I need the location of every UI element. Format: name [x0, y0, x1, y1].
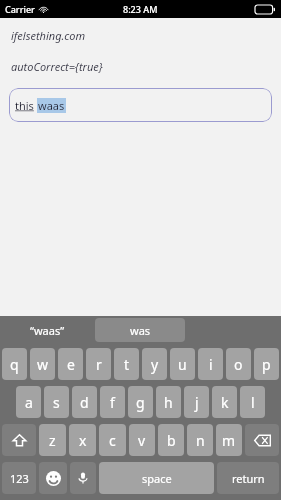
staticText: n: [196, 431, 205, 450]
button[interactable]: b: [158, 424, 184, 456]
button[interactable]: r: [86, 348, 111, 380]
button[interactable]: Shift: [2, 424, 36, 456]
button[interactable]: h: [156, 386, 181, 418]
button[interactable]: was: [95, 318, 185, 342]
staticText: 123: [10, 471, 29, 486]
staticText: u: [178, 355, 187, 374]
staticText: e: [67, 355, 75, 374]
button[interactable]: n: [187, 424, 213, 456]
button[interactable]: m: [216, 424, 242, 456]
staticText: z: [49, 431, 56, 450]
staticText: f: [110, 393, 115, 412]
button[interactable]: Emoji: [39, 462, 67, 494]
staticText: was: [130, 323, 151, 338]
staticText: i: [209, 355, 213, 374]
button[interactable]: u: [170, 348, 195, 380]
staticText: this: [15, 98, 34, 113]
button[interactable]: k: [212, 386, 237, 418]
staticText: “waas”: [30, 323, 65, 338]
button[interactable]: Voice input: [70, 462, 96, 494]
button[interactable]: a: [16, 386, 41, 418]
staticText: d: [80, 393, 89, 412]
button[interactable]: j: [184, 386, 209, 418]
staticText: l: [251, 393, 255, 412]
button[interactable]: space: [99, 462, 214, 494]
staticText: Carrier: [5, 3, 35, 15]
staticText: return: [232, 471, 265, 486]
staticText: c: [109, 431, 116, 450]
staticText: q: [10, 355, 19, 374]
button[interactable]: this: [9, 88, 272, 122]
staticText: k: [221, 393, 229, 412]
button[interactable]: x: [69, 424, 96, 456]
button[interactable]: d: [72, 386, 97, 418]
button[interactable]: g: [128, 386, 153, 418]
staticText: x: [79, 431, 87, 450]
button[interactable]: t: [114, 348, 139, 380]
staticText: s: [53, 393, 60, 412]
button[interactable]: 123: [2, 462, 36, 494]
button[interactable]: return: [217, 462, 279, 494]
staticText: a: [25, 393, 33, 412]
button[interactable]: p: [254, 348, 279, 380]
staticText: r: [96, 355, 102, 374]
button[interactable]: z: [39, 424, 66, 456]
staticText: o: [234, 355, 243, 374]
button[interactable]: c: [99, 424, 126, 456]
staticText: j: [195, 393, 199, 412]
button[interactable]: l: [240, 386, 265, 418]
button[interactable]: o: [226, 348, 251, 380]
staticText: y: [151, 355, 159, 374]
button[interactable]: v: [129, 424, 155, 456]
staticText: g: [136, 393, 145, 412]
button[interactable]: q: [2, 348, 27, 380]
button[interactable]: i: [198, 348, 223, 380]
button[interactable]: f: [100, 386, 125, 418]
button[interactable]: y: [142, 348, 167, 380]
button[interactable]: w: [30, 348, 55, 380]
staticText: h: [164, 393, 173, 412]
staticText: 8:23 AM: [123, 3, 158, 15]
button[interactable]: “waas”: [0, 316, 95, 344]
staticText: autoCorrect={true}: [11, 59, 103, 74]
staticText: waas: [38, 98, 65, 113]
staticText: t: [124, 355, 130, 374]
staticText: v: [138, 431, 146, 450]
staticText: ifelsething.com: [11, 28, 86, 43]
staticText: p: [262, 355, 271, 374]
staticText: m: [222, 431, 236, 450]
staticText: w: [37, 355, 49, 374]
button[interactable]: s: [44, 386, 69, 418]
staticText: b: [167, 431, 176, 450]
staticText: space: [142, 471, 172, 486]
button[interactable]: Backspace: [245, 424, 279, 456]
button[interactable]: e: [58, 348, 83, 380]
